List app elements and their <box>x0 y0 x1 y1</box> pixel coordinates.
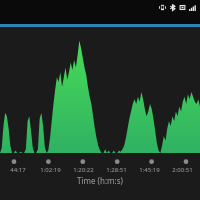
staticText: 2:00:51 <box>172 166 193 174</box>
staticText: Time (h:m:s) <box>77 175 123 186</box>
staticText: 1:02:19 <box>40 166 61 174</box>
staticText: 1:20:22 <box>73 166 94 174</box>
staticText: 1:45:19 <box>139 166 160 174</box>
button[interactable]: Pace chart <box>0 27 200 153</box>
staticText: 1:28:51 <box>106 166 127 174</box>
staticText: 44:17 <box>10 166 26 174</box>
